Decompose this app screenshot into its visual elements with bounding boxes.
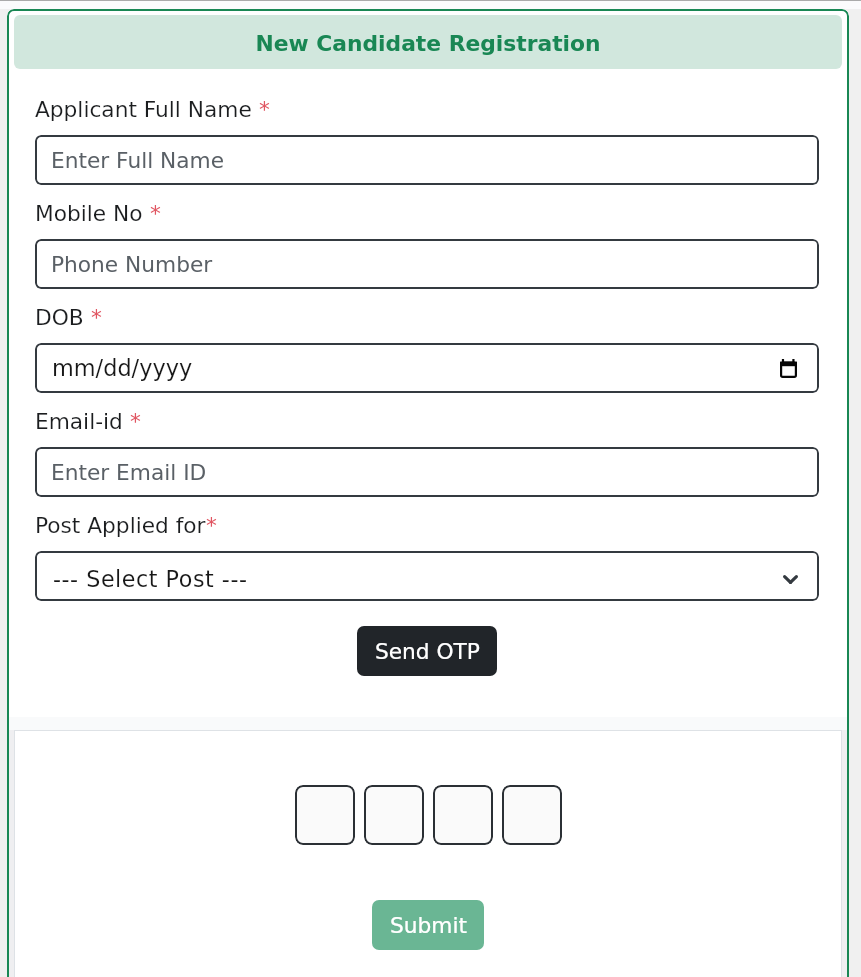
- button[interactable]: OTP digit 2: [364, 785, 424, 845]
- button[interactable]: OTP digit 1: [295, 785, 355, 845]
- staticText: --- Select Post ---: [53, 566, 248, 592]
- staticText: *: [130, 409, 141, 434]
- staticText: Applicant Full Name: [35, 97, 252, 122]
- staticText: *: [150, 201, 161, 226]
- staticText: Submit: [390, 913, 467, 938]
- staticText: Mobile No: [35, 201, 143, 226]
- button[interactable]: Send OTP: [357, 626, 497, 676]
- staticText: Enter Full Name: [51, 148, 225, 173]
- staticText: Email-id: [35, 409, 123, 434]
- staticText: New Candidate Registration: [255, 31, 601, 56]
- staticText: Enter Email ID: [51, 460, 207, 485]
- staticText: *: [91, 305, 102, 330]
- button[interactable]: Mobile No: [35, 239, 819, 289]
- staticText: *: [259, 97, 270, 122]
- staticText: Phone Number: [51, 252, 213, 277]
- button[interactable]: Email-id: [35, 447, 819, 497]
- button[interactable]: DOB: [35, 343, 819, 393]
- staticText: DOB: [35, 305, 84, 330]
- staticText: mm/dd/yyyy: [52, 355, 193, 381]
- button[interactable]: OTP digit 3: [433, 785, 493, 845]
- button[interactable]: Applicant Full Name: [35, 135, 819, 185]
- button[interactable]: Post Applied for: [35, 551, 819, 601]
- staticText: Post Applied for: [35, 513, 206, 538]
- button[interactable]: Submit: [372, 900, 484, 950]
- button[interactable]: OTP digit 4: [502, 785, 562, 845]
- staticText: *: [206, 513, 217, 538]
- staticText: Send OTP: [375, 639, 480, 664]
